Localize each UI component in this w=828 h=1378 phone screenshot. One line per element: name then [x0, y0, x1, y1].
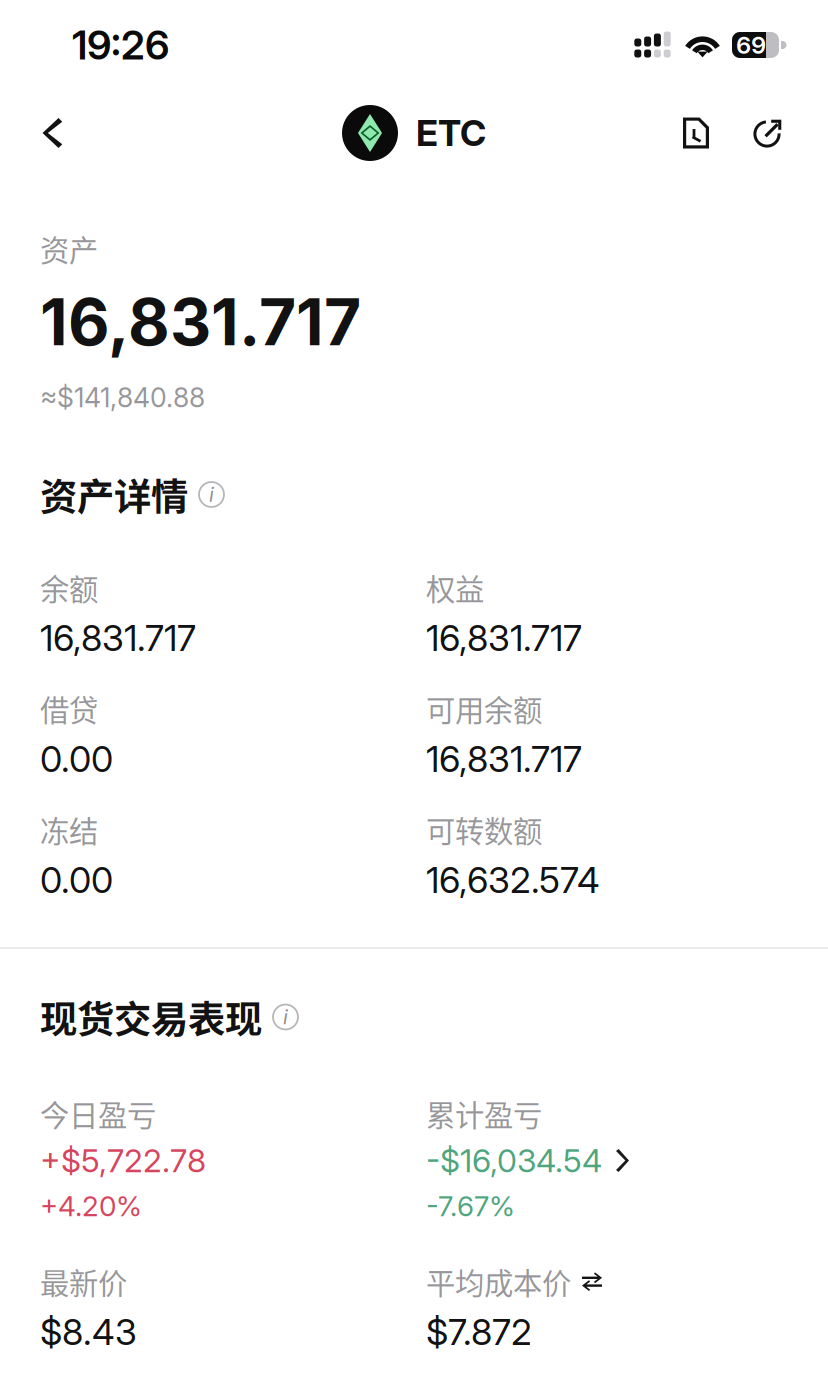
staticText: 借贷 [40, 687, 98, 730]
staticText: 16,831.717 [40, 616, 196, 660]
staticText: 权益 [426, 566, 484, 609]
staticText: 16,831.717 [40, 283, 361, 361]
staticText: i [209, 482, 214, 507]
staticText: 最新价 [40, 1260, 127, 1303]
staticText: 0.00 [40, 737, 113, 781]
staticText: 资产 [40, 227, 98, 270]
staticText: i [283, 1005, 288, 1029]
staticText: 资产详情 [40, 467, 188, 522]
staticText: $8.43 [40, 1310, 137, 1354]
button[interactable]: Back [19, 98, 83, 168]
staticText: 16,632.574 [426, 858, 600, 902]
button[interactable]: -$16,034.54 [426, 1141, 629, 1180]
staticText: 平均成本价 [426, 1260, 571, 1303]
staticText: ETC [416, 111, 486, 155]
staticText: 可用余额 [426, 687, 542, 730]
staticText: 现货交易表现 [40, 990, 262, 1044]
staticText: 0.00 [40, 858, 113, 902]
staticText: 可转数额 [426, 808, 542, 851]
button[interactable]: About asset detail [199, 482, 224, 507]
staticText: 16,831.717 [426, 616, 582, 660]
staticText: ≈$141,840.88 [40, 381, 205, 414]
staticText: -7.67% [426, 1189, 515, 1223]
staticText: -$16,034.54 [426, 1141, 602, 1180]
staticText: 69 [736, 30, 766, 59]
button[interactable]: Order history [667, 98, 725, 168]
staticText: 余额 [40, 566, 98, 609]
staticText: +4.20% [40, 1189, 142, 1223]
staticText: 16,831.717 [426, 737, 582, 781]
staticText: 累计盈亏 [426, 1092, 542, 1135]
staticText: 今日盈亏 [40, 1092, 156, 1135]
button[interactable]: About spot performance [273, 1004, 298, 1029]
button[interactable]: Share [739, 98, 797, 168]
staticText: 冻结 [40, 808, 98, 851]
staticText: 19:26 [72, 21, 169, 69]
staticText: +$5,722.78 [40, 1141, 206, 1180]
staticText: $7.872 [426, 1310, 532, 1354]
button[interactable]: Switch cost basis [582, 1271, 602, 1292]
